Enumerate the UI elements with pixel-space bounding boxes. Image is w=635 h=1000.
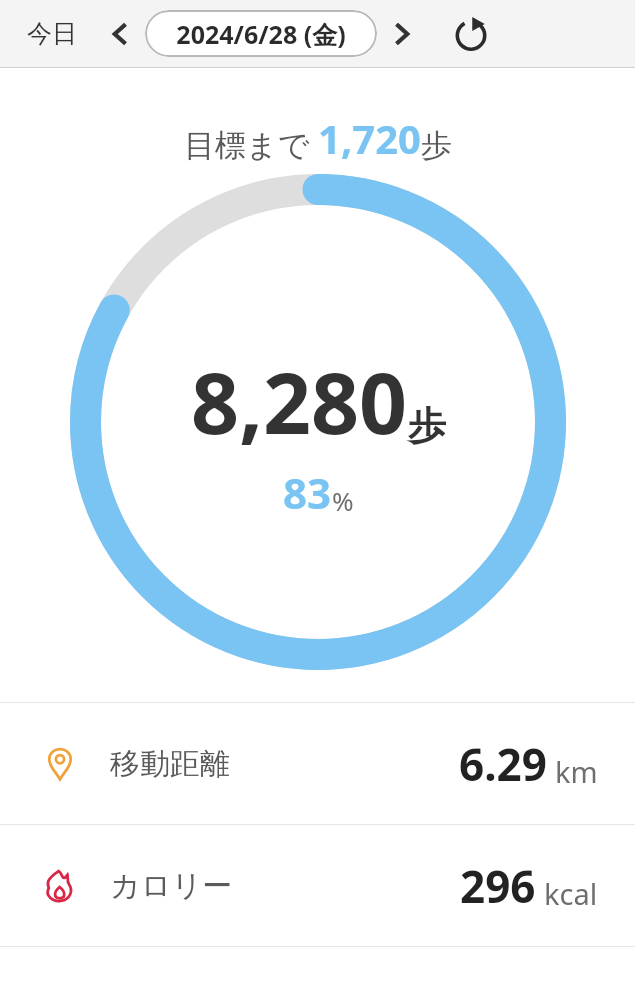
staticText: 目標まで (184, 126, 310, 165)
staticText: 歩 (408, 402, 446, 450)
staticText: 歩 (421, 126, 452, 165)
staticText: 移動距離 (110, 745, 230, 783)
staticText: 1,720 (318, 111, 421, 165)
button[interactable]: Next day (383, 15, 421, 53)
button[interactable]: 2024/6/28 (金) (145, 10, 377, 57)
staticText: kcal (544, 874, 598, 913)
staticText: 8,280 (191, 344, 408, 458)
button[interactable]: Previous day (101, 15, 139, 53)
staticText: 296 (460, 856, 536, 916)
button[interactable]: 移動距離 (0, 703, 635, 824)
button[interactable]: 今日 (25, 12, 79, 55)
staticText: 6.29 (459, 734, 547, 794)
staticText: % (332, 483, 354, 518)
button[interactable]: Refresh (449, 12, 493, 56)
staticText: km (555, 752, 598, 791)
staticText: 今日 (27, 18, 77, 49)
staticText: カロリー (110, 867, 233, 905)
staticText: 2024/6/28 (金) (176, 17, 346, 51)
staticText: 83 (283, 464, 332, 521)
button[interactable]: カロリー (0, 825, 635, 946)
